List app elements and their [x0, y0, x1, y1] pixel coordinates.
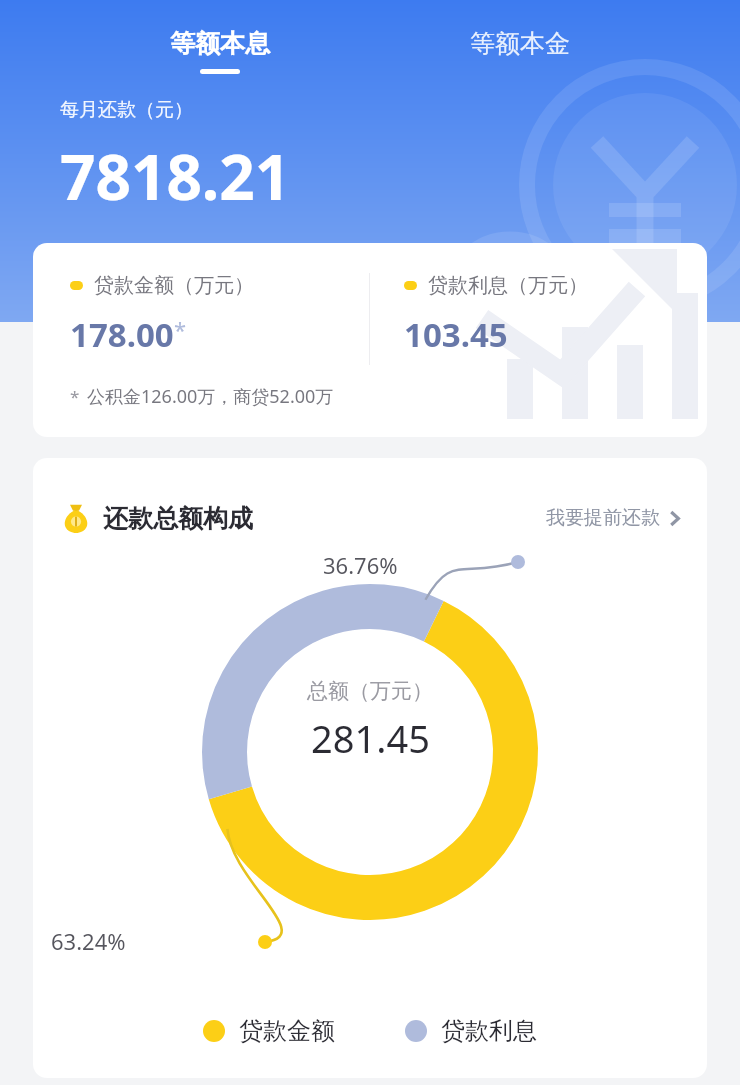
staticText: 贷款金额: [239, 1016, 335, 1046]
staticText: 我要提前还款: [546, 506, 660, 530]
staticText: 贷款利息（万元）: [428, 273, 588, 298]
staticText: 103.45: [404, 312, 508, 357]
staticText: *: [174, 314, 187, 344]
staticText: 36.76%: [323, 550, 398, 580]
button[interactable]: 等额本金: [370, 22, 670, 75]
button[interactable]: 贷款金额: [199, 1012, 339, 1050]
other: Money bag: [61, 503, 91, 533]
button[interactable]: 我要提前还款: [542, 502, 685, 534]
staticText: 等额本息: [170, 28, 270, 59]
staticText: 贷款利息: [441, 1016, 537, 1046]
staticText: 7818.21: [60, 134, 291, 218]
staticText: 281.45: [311, 712, 430, 764]
staticText: 公积金126.00万，商贷52.00万: [87, 384, 334, 409]
staticText: 63.24%: [51, 926, 126, 956]
staticText: 每月还款（元）: [60, 98, 193, 122]
staticText: 还款总额构成: [103, 503, 253, 534]
staticText: 178.00: [70, 312, 174, 357]
staticText: 等额本金: [470, 28, 570, 59]
staticText: *: [70, 385, 80, 408]
button[interactable]: 贷款利息: [401, 1012, 541, 1050]
staticText: 贷款金额（万元）: [94, 273, 254, 298]
staticText: 总额（万元）: [307, 678, 433, 704]
button[interactable]: 等额本息: [70, 22, 370, 80]
